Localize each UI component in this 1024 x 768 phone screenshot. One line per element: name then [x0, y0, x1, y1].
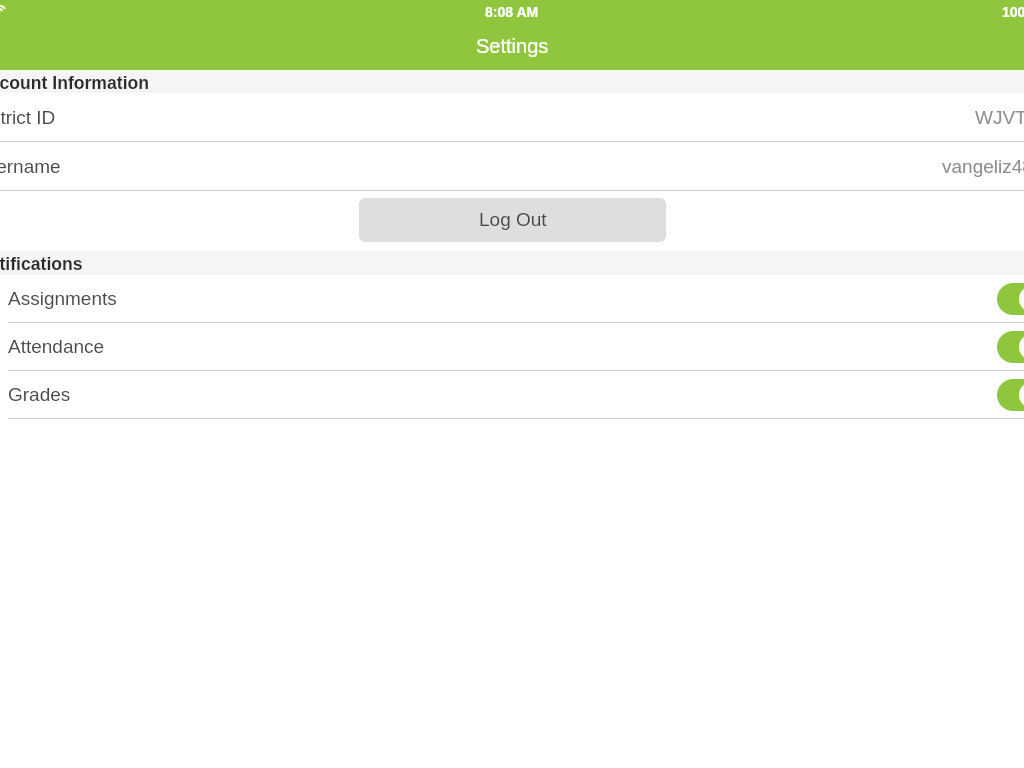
other: Wi-Fi — [0, 1, 9, 15]
button[interactable]: Attendance notifications toggle — [997, 331, 1024, 363]
staticText: Account Information — [0, 73, 150, 93]
button[interactable]: Grades notifications toggle — [997, 379, 1024, 411]
staticText: Settings — [476, 35, 549, 57]
button[interactable]: District ID — [0, 93, 1024, 141]
button[interactable]: Attendance — [0, 323, 1024, 370]
staticText: Assignments — [8, 288, 117, 309]
staticText: Username — [0, 156, 61, 177]
staticText: Attendance — [8, 336, 105, 357]
staticText: WJVTXR — [975, 107, 1024, 128]
button[interactable]: Username — [0, 142, 1024, 190]
staticText: vangeliz4889 — [942, 156, 1024, 177]
button[interactable]: Assignments notifications toggle — [997, 283, 1024, 315]
staticText: Notifications — [0, 254, 83, 274]
staticText: 100% — [1002, 4, 1024, 20]
staticText: Log Out — [479, 209, 547, 230]
staticText: District ID — [0, 107, 56, 128]
button[interactable]: Assignments — [0, 275, 1024, 322]
staticText: 8:08 AM — [485, 4, 539, 20]
staticText: Grades — [8, 384, 71, 405]
button[interactable]: Grades — [0, 371, 1024, 418]
button[interactable]: Log Out — [359, 198, 666, 242]
